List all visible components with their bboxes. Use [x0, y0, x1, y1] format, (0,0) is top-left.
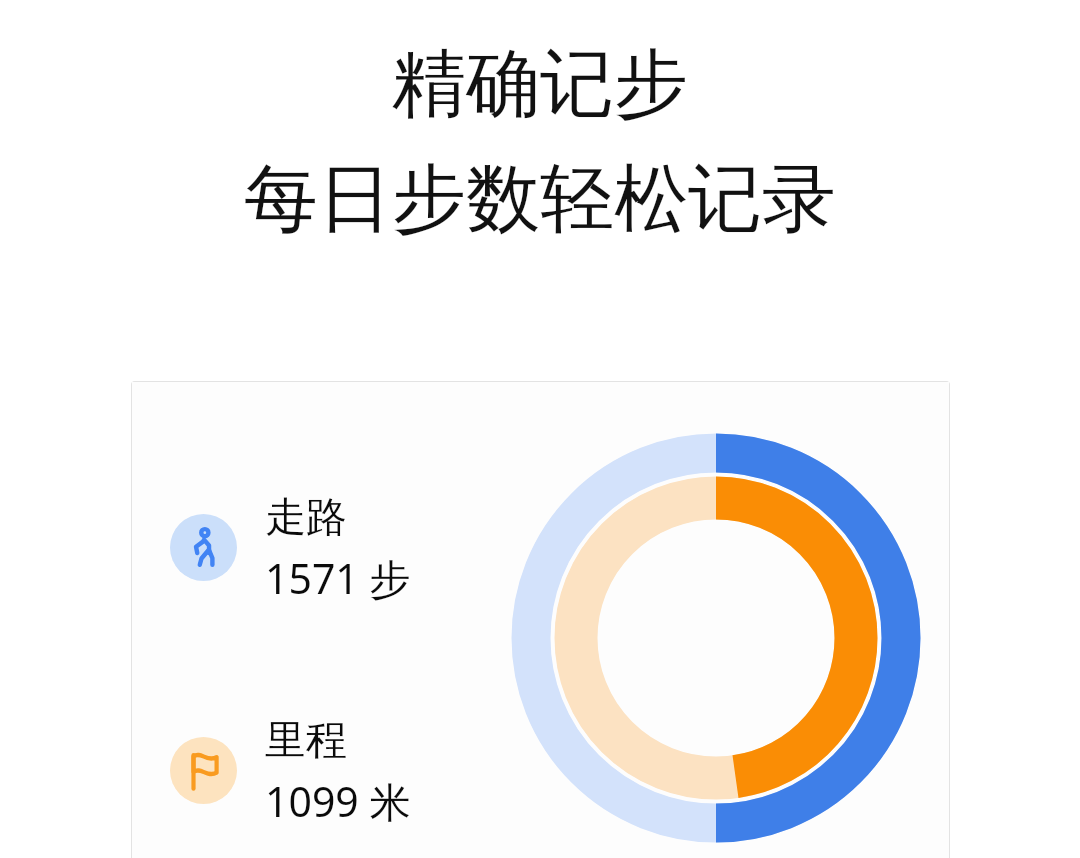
staticText: 精确记步 — [392, 38, 688, 131]
button[interactable]: Walking — [170, 492, 490, 602]
other: Walking — [170, 514, 237, 581]
button[interactable]: Distance — [170, 715, 490, 825]
staticText: 1571 步 — [265, 550, 411, 602]
staticText: 走路 — [265, 492, 347, 544]
staticText: 里程 — [265, 715, 347, 767]
staticText: 1099 米 — [265, 773, 411, 825]
other: Distance — [170, 737, 237, 804]
staticText: 每日步数轻松记录 — [244, 153, 836, 246]
button[interactable]: Walking — [131, 381, 950, 858]
